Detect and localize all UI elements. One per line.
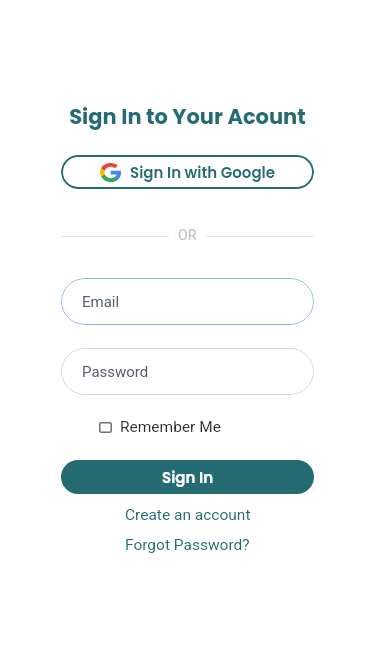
button[interactable]: Forgot Password?: [61, 534, 314, 555]
staticText: OR: [178, 227, 197, 243]
staticText: Sign In: [162, 467, 214, 488]
staticText: Sign In with Google: [130, 162, 276, 183]
button[interactable]: Password: [61, 348, 314, 395]
staticText: Forgot Password?: [125, 536, 250, 554]
staticText: Email: [82, 293, 120, 311]
staticText: Sign In to Your Acount: [69, 102, 306, 131]
button[interactable]: Remember Me: [99, 417, 221, 437]
staticText: Remember Me: [120, 418, 221, 436]
staticText: Create an account: [125, 506, 251, 524]
button[interactable]: Create an account: [61, 504, 314, 525]
button[interactable]: Sign In: [61, 460, 314, 494]
staticText: Password: [82, 363, 149, 381]
other: Google logo: [100, 163, 121, 182]
button[interactable]: Email: [61, 278, 314, 325]
button[interactable]: Google logo: [61, 155, 314, 189]
